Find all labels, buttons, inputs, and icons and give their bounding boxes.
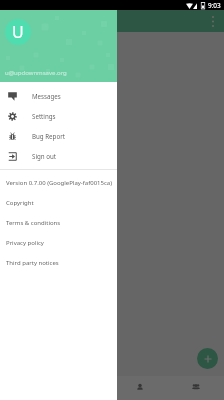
button[interactable]: Privacy policy <box>0 233 117 253</box>
button[interactable]: Profile <box>112 376 168 398</box>
staticText: Terms & conditions <box>6 219 61 227</box>
staticText: Copyright <box>6 199 34 207</box>
button[interactable]: Copyright <box>0 193 117 213</box>
staticText: Bug Report <box>32 132 65 140</box>
button[interactable]: Sign out <box>0 146 117 166</box>
button[interactable]: More options <box>206 10 220 32</box>
staticText: Messages <box>32 92 61 100</box>
button[interactable]: Groups <box>168 376 224 398</box>
staticText: Settings <box>32 112 56 120</box>
button[interactable]: Add <box>197 348 218 369</box>
staticText: Sign out <box>32 152 57 160</box>
button[interactable]: Messages <box>0 86 117 106</box>
staticText: Version 0.7.00 (GooglePlay-faf0015ca) <box>6 179 113 187</box>
button[interactable]: Settings <box>0 106 117 126</box>
button[interactable]: Bug Report <box>0 126 117 146</box>
staticText: U <box>12 21 24 43</box>
staticText: Privacy policy <box>6 239 44 247</box>
staticText: 9:03 <box>208 1 221 10</box>
button[interactable]: Third party notices <box>0 253 117 273</box>
button[interactable]: Version 0.7.00 (GooglePlay-faf0015ca) <box>0 173 117 193</box>
staticText: u@updownmsave.org <box>5 69 67 77</box>
button[interactable]: Terms & conditions <box>0 213 117 233</box>
staticText: Third party notices <box>6 259 59 267</box>
